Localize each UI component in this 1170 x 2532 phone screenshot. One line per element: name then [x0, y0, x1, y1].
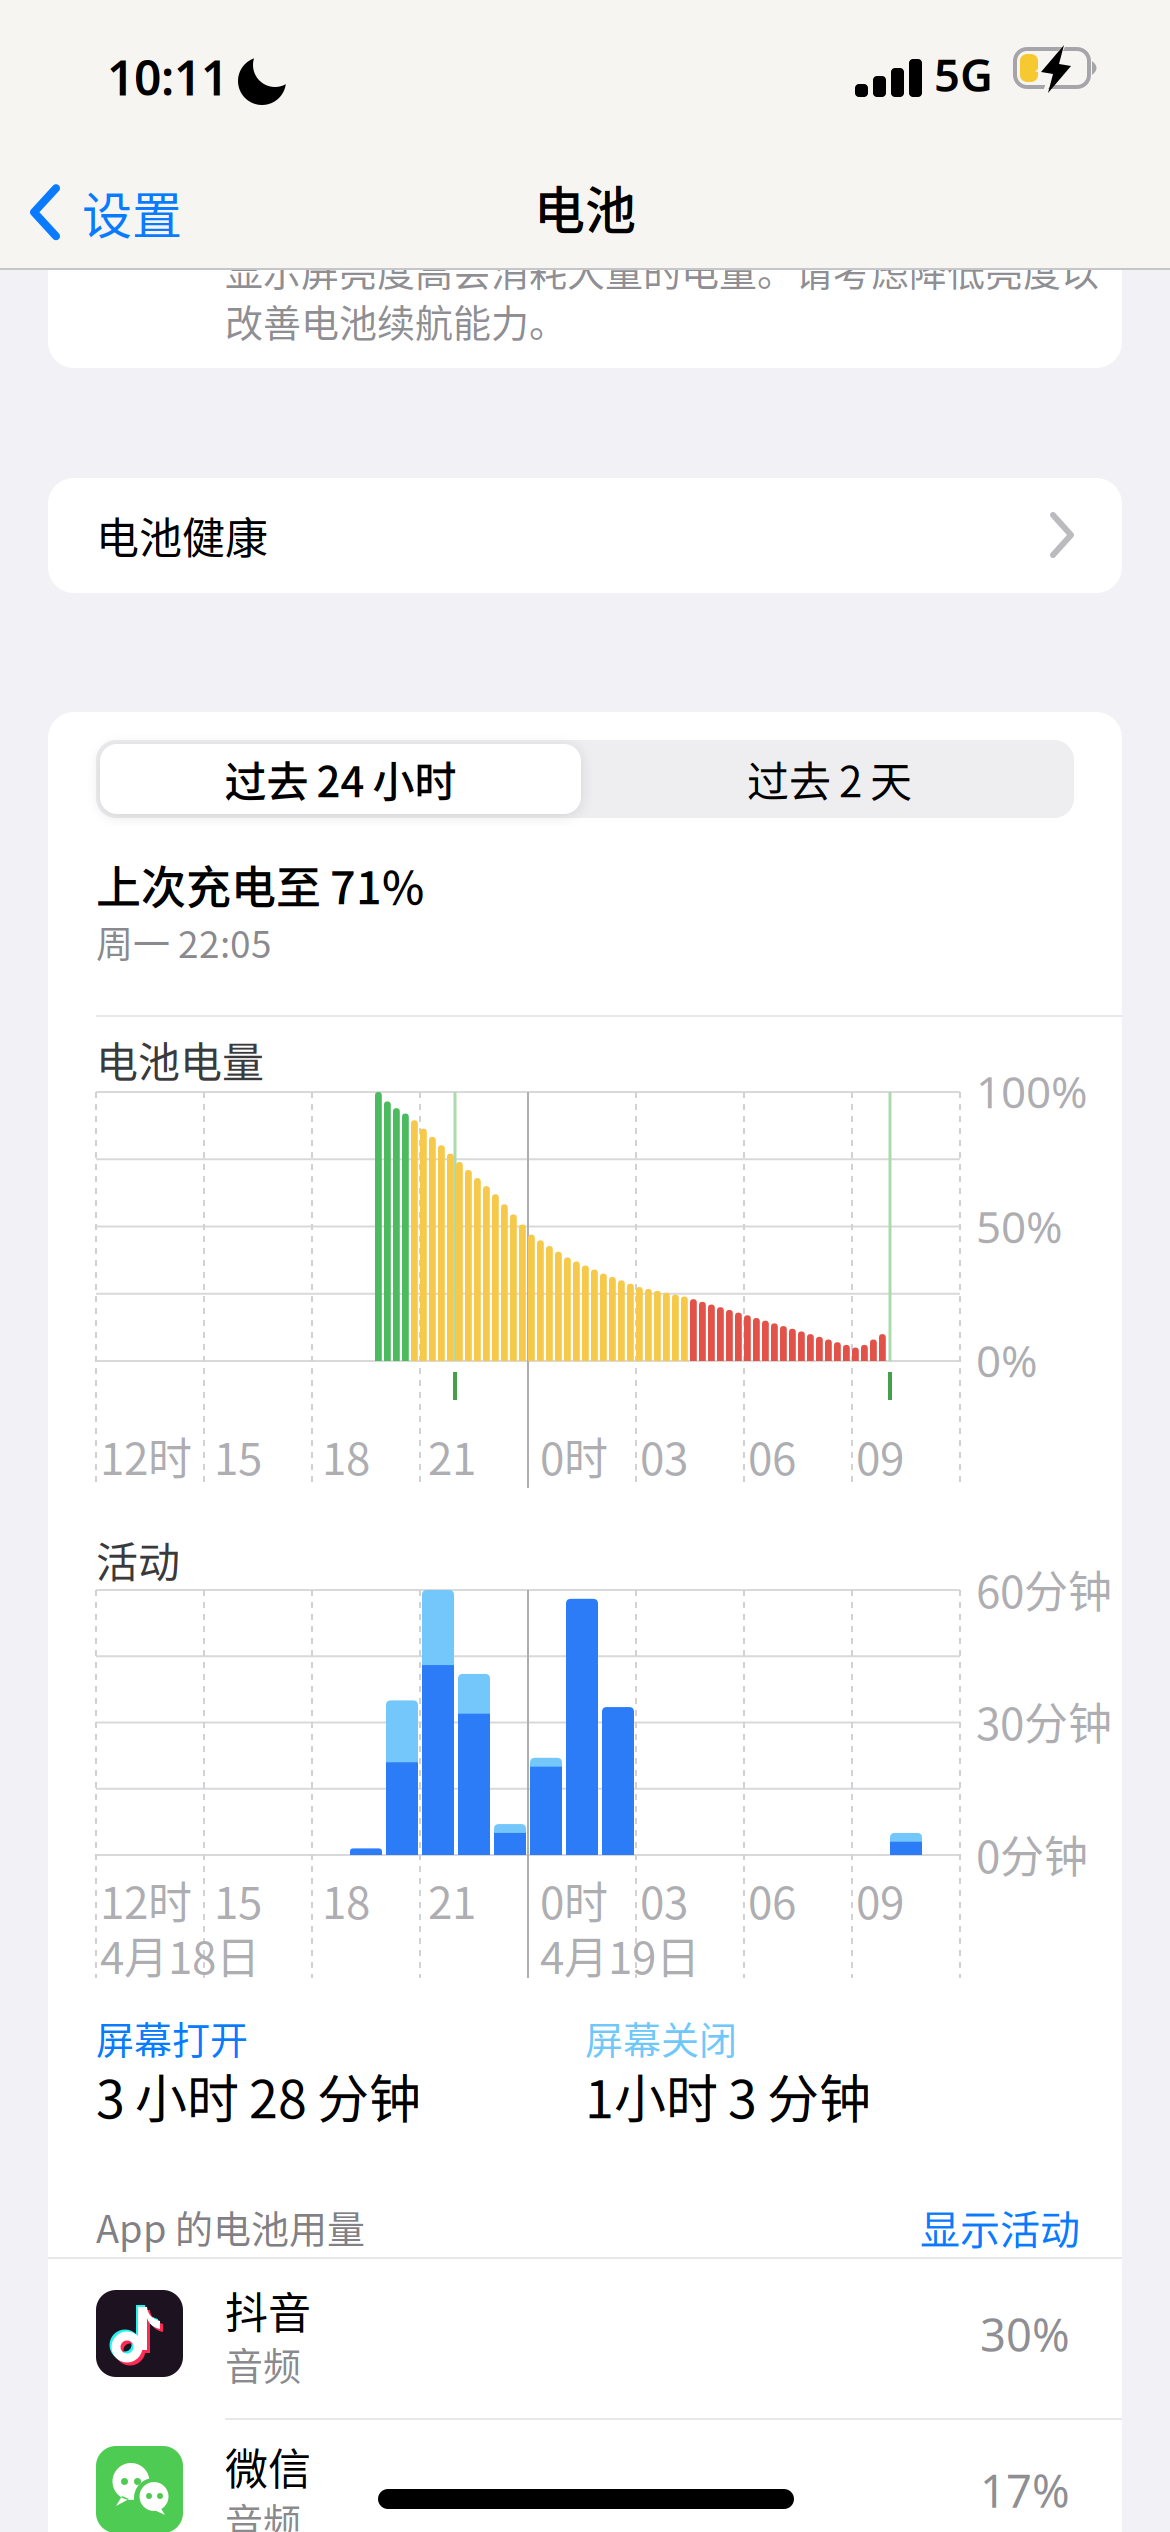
staticText: 50% [976, 1197, 1063, 1255]
staticText: 4月18日 [100, 1923, 260, 1987]
staticText: 10:11 [107, 45, 228, 109]
staticText: 21 [428, 1868, 476, 1932]
staticText: 周一 22:05 [96, 915, 272, 969]
button[interactable]: 过去 2 天 [585, 740, 1074, 818]
staticText: 电池健康 [96, 504, 268, 566]
button[interactable]: 设置 [30, 176, 182, 248]
staticText: 活动 [96, 1529, 180, 1590]
staticText: 0% [976, 1331, 1038, 1389]
staticText: 上次充电至 71% [96, 852, 424, 917]
staticText: 09 [856, 1424, 904, 1488]
staticText: 4月19日 [540, 1923, 700, 1987]
staticText: 3 小时 28 分钟 [96, 2058, 421, 2133]
staticText: 音频 [225, 2492, 301, 2532]
staticText: 0时 [540, 1424, 608, 1488]
staticText: 15 [214, 1424, 262, 1488]
staticText: 0时 [540, 1868, 608, 1932]
button[interactable]: 显示活动 [920, 2198, 1080, 2256]
button[interactable]: 过去 24 小时 [96, 740, 585, 818]
staticText: 15 [214, 1868, 262, 1932]
staticText: 1小时 3 分钟 [585, 2058, 871, 2133]
button[interactable]: 抖音 [96, 2285, 1122, 2418]
staticText: 显示屏亮度高会消耗大量的电量。请考虑降低亮度以 [225, 242, 1099, 297]
staticText: 0分钟 [976, 1822, 1088, 1886]
staticText: 微信 [225, 2435, 311, 2497]
staticText: 21 [428, 1424, 476, 1488]
staticText: 09 [856, 1868, 904, 1932]
staticText: 设置 [82, 176, 182, 248]
staticText: 屏幕关闭 [585, 2010, 737, 2065]
staticText: 30分钟 [976, 1689, 1112, 1753]
staticText: 音频 [225, 2336, 301, 2391]
staticText: 03 [640, 1424, 688, 1488]
staticText: 100% [976, 1062, 1088, 1120]
staticText: 屏幕打开 [96, 2010, 248, 2065]
staticText: 06 [748, 1868, 796, 1932]
button[interactable]: 电池健康 [48, 478, 1122, 593]
staticText: 18 [322, 1424, 370, 1488]
staticText: 06 [748, 1424, 796, 1488]
staticText: 12时 [100, 1424, 192, 1488]
staticText: 过去 2 天 [747, 749, 912, 809]
staticText: 改善电池续航能力。 [225, 293, 567, 348]
staticText: 60分钟 [976, 1557, 1112, 1621]
staticText: 5G [934, 44, 993, 104]
staticText: App 的电池用量 [96, 2199, 365, 2254]
staticText: 12时 [100, 1868, 192, 1932]
staticText: 17% [980, 2460, 1070, 2520]
staticText: 电池 [534, 170, 636, 244]
staticText: 18 [322, 1868, 370, 1932]
staticText: 30% [980, 2304, 1070, 2364]
staticText: 抖音 [225, 2279, 311, 2341]
button[interactable]: 微信 [96, 2441, 1122, 2532]
staticText: 过去 24 小时 [224, 749, 456, 809]
staticText: 显示活动 [920, 2198, 1080, 2256]
staticText: 03 [640, 1868, 688, 1932]
staticText: 电池电量 [96, 1029, 264, 1090]
